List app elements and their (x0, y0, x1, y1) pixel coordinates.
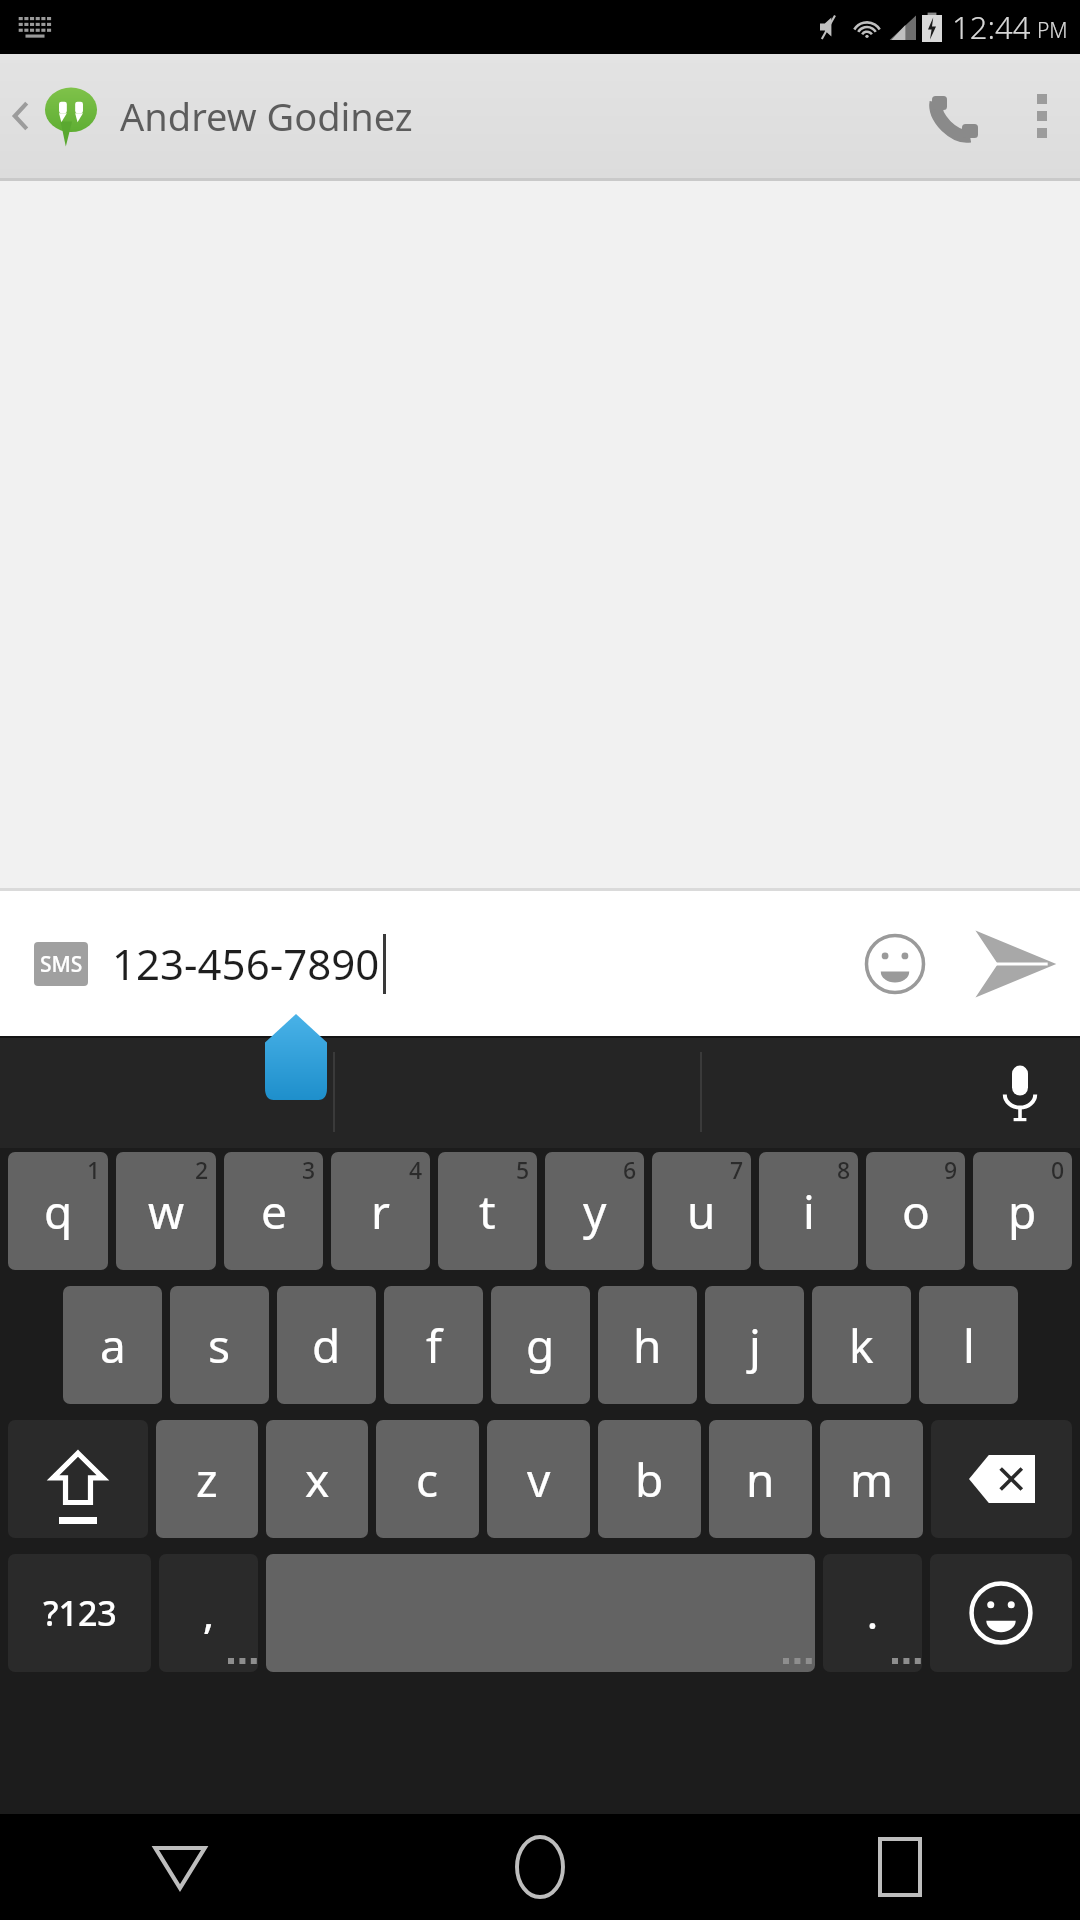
staticText: 3 (302, 1154, 316, 1185)
staticText: 1 (87, 1154, 101, 1185)
staticText: v (527, 1448, 551, 1511)
button[interactable]: Call (908, 54, 1004, 178)
staticText: 0 (1051, 1154, 1065, 1185)
button[interactable]: Andrew Godinez (0, 54, 1080, 178)
button[interactable]: s (170, 1286, 269, 1404)
staticText: q (44, 1180, 73, 1243)
button[interactable]: Home (360, 1814, 720, 1920)
button[interactable]: o (866, 1152, 965, 1270)
staticText: 4 (409, 1154, 423, 1185)
button[interactable]: y (545, 1152, 644, 1270)
button[interactable]: Send (950, 891, 1080, 1036)
button[interactable]: q (8, 1152, 108, 1270)
staticText: PM (1037, 16, 1068, 45)
staticText: a (100, 1314, 126, 1377)
staticText: 7 (730, 1154, 744, 1185)
staticText: b (635, 1448, 664, 1511)
button[interactable]: w (116, 1152, 216, 1270)
staticText: o (902, 1180, 930, 1243)
staticText: c (416, 1448, 439, 1511)
button[interactable]: i (759, 1152, 858, 1270)
staticText: SMS (40, 950, 83, 979)
staticText: h (633, 1314, 662, 1377)
button[interactable]: 123-456-7890 (112, 891, 840, 1036)
staticText: t (479, 1180, 496, 1243)
button[interactable]: k (812, 1286, 911, 1404)
button[interactable]: h (598, 1286, 697, 1404)
staticText: 12:44 (952, 6, 1031, 48)
button[interactable]: x (266, 1420, 368, 1538)
button[interactable]: , (159, 1554, 258, 1672)
button[interactable]: . (823, 1554, 922, 1672)
button[interactable]: Insert emoji (840, 891, 950, 1036)
button[interactable]: More options (1004, 54, 1080, 178)
staticText: g (526, 1314, 555, 1377)
staticText: y (583, 1180, 607, 1243)
staticText: n (746, 1448, 775, 1511)
button[interactable]: t (438, 1152, 537, 1270)
staticText: u (687, 1180, 716, 1243)
staticText: m (850, 1448, 894, 1511)
button[interactable]: z (156, 1420, 258, 1538)
staticText: 123-456-7890 (112, 935, 380, 992)
staticText: 2 (195, 1154, 209, 1185)
staticText: 5 (516, 1154, 530, 1185)
staticText: Andrew Godinez (120, 90, 413, 142)
staticText: j (749, 1314, 761, 1377)
button[interactable]: l (919, 1286, 1018, 1404)
button[interactable]: ?123 (8, 1554, 151, 1672)
button[interactable]: m (820, 1420, 923, 1538)
staticText: e (261, 1180, 287, 1243)
staticText: x (305, 1448, 330, 1511)
button[interactable]: c (376, 1420, 479, 1538)
button[interactable]: d (277, 1286, 376, 1404)
button[interactable]: n (709, 1420, 812, 1538)
staticText: k (849, 1314, 874, 1377)
staticText: z (196, 1448, 218, 1511)
button[interactable]: Emoji (930, 1554, 1072, 1672)
button[interactable]: b (598, 1420, 701, 1538)
button[interactable]: g (491, 1286, 590, 1404)
button[interactable]: e (224, 1152, 323, 1270)
staticText: r (371, 1180, 390, 1243)
staticText: w (148, 1180, 185, 1243)
staticText: 8 (837, 1154, 851, 1185)
staticText: ?123 (43, 1590, 117, 1636)
button[interactable]: Voice input (960, 1036, 1080, 1148)
button[interactable]: f (384, 1286, 483, 1404)
staticText: , (203, 1586, 214, 1640)
button[interactable]: u (652, 1152, 751, 1270)
staticText: 6 (623, 1154, 637, 1185)
staticText: f (426, 1314, 442, 1377)
button[interactable]: r (331, 1152, 430, 1270)
button[interactable]: j (705, 1286, 804, 1404)
button[interactable]: a (63, 1286, 162, 1404)
button[interactable]: Shift (8, 1420, 148, 1538)
staticText: d (312, 1314, 341, 1377)
button[interactable]: Recent apps (720, 1814, 1080, 1920)
staticText: p (1008, 1180, 1037, 1243)
button[interactable]: Hide keyboard (0, 1814, 360, 1920)
staticText: i (803, 1180, 815, 1243)
staticText: . (867, 1586, 878, 1640)
staticText: l (963, 1314, 975, 1377)
staticText: 9 (944, 1154, 958, 1185)
button[interactable]: Backspace (931, 1420, 1072, 1538)
button[interactable]: p (973, 1152, 1072, 1270)
staticText: s (208, 1314, 231, 1377)
button[interactable]: v (487, 1420, 590, 1538)
